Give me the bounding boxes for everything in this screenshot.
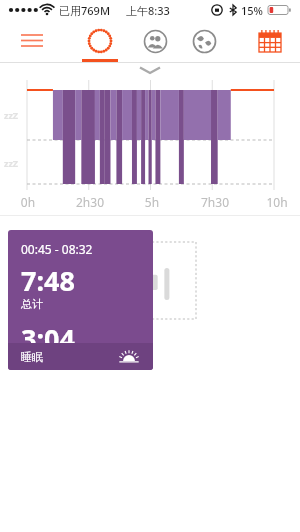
staticText: 10h (257, 194, 297, 210)
button[interactable]: 00:45 - 08:32 (8, 230, 153, 370)
staticText: 00:45 - 08:32 (21, 241, 93, 257)
staticText: 总计 (21, 297, 43, 311)
button[interactable]: Activity (74, 20, 126, 62)
staticText: 5h (132, 194, 172, 210)
staticText: 2h30 (70, 194, 110, 210)
staticText: 0h (8, 194, 48, 210)
button[interactable]: Explore (178, 20, 230, 62)
staticText: zzZ (4, 157, 19, 169)
staticText: 15% (241, 3, 263, 18)
button[interactable]: Friends (129, 20, 181, 62)
staticText: 7h30 (195, 194, 235, 210)
staticText: zzZ (4, 109, 19, 121)
staticText: 3:04 (21, 320, 75, 343)
button[interactable]: Calendar (248, 20, 292, 62)
staticText: 上午8:33 (126, 3, 170, 18)
button[interactable]: Menu (8, 20, 56, 62)
staticText: 7:48 (21, 262, 75, 299)
staticText: 睡眠 (21, 350, 43, 364)
staticText: 已用769M (59, 3, 110, 18)
